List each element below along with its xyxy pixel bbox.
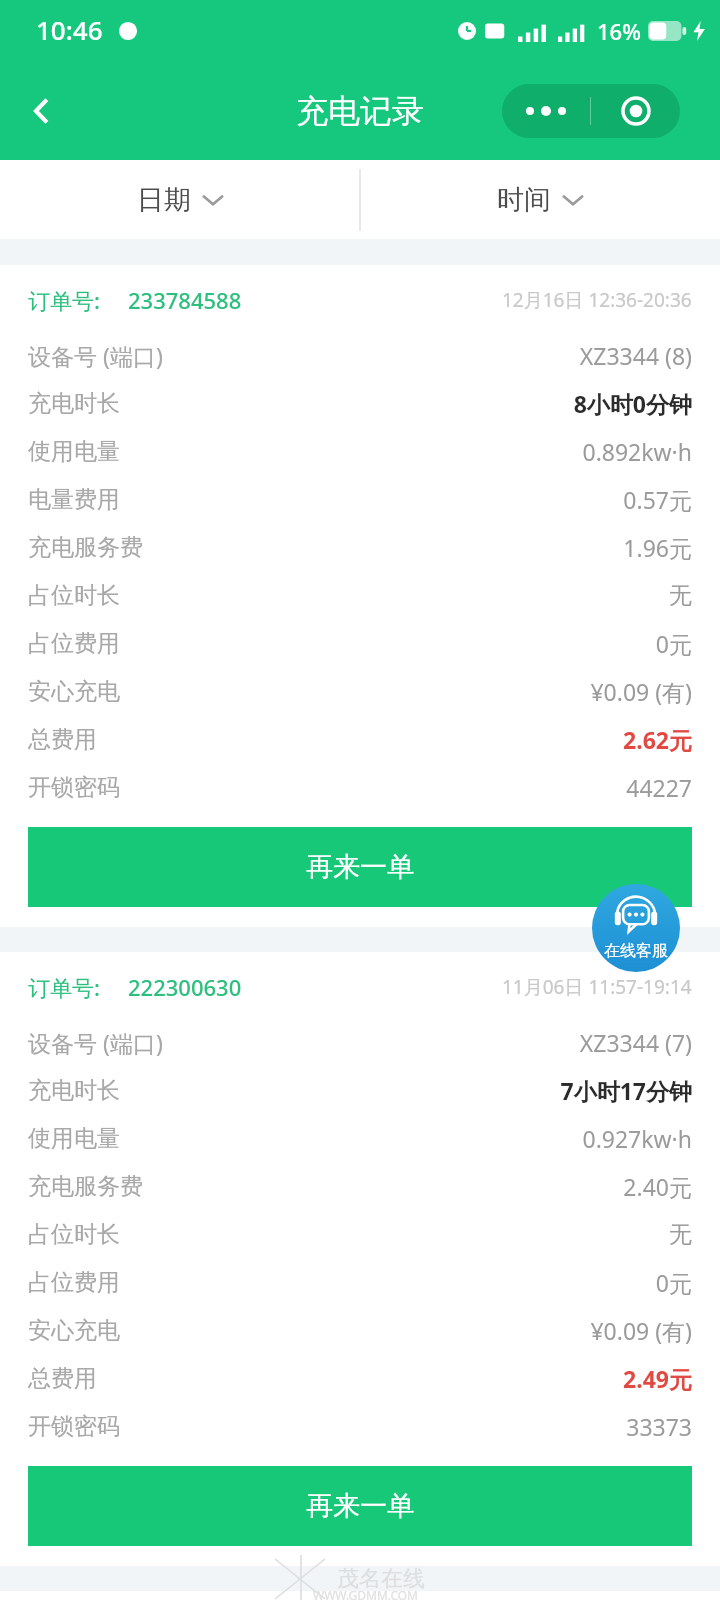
button[interactable]: 再来一单: [28, 827, 692, 907]
staticText: 设备号 (端口): [28, 1027, 163, 1058]
staticText: 充电服务费: [28, 1172, 143, 1201]
button[interactable]: 再来一单: [28, 1466, 692, 1546]
button[interactable]: 日期: [0, 160, 360, 239]
staticText: 11月06日 11:57-19:14: [502, 974, 692, 1000]
button[interactable]: 时间: [360, 160, 720, 239]
staticText: 充电时长: [28, 389, 120, 418]
staticText: 1.96元: [623, 532, 692, 563]
staticText: ¥0.09 (有): [590, 676, 692, 707]
staticText: 10:46: [36, 12, 103, 47]
staticText: 2.40元: [623, 1171, 692, 1202]
staticText: 时间: [497, 183, 551, 217]
staticText: 使用电量: [28, 437, 120, 466]
staticText: 占位时长: [28, 581, 120, 610]
button[interactable]: Back: [14, 83, 70, 139]
staticText: 充电时长: [28, 1076, 120, 1105]
button[interactable]: 在线客服: [592, 884, 680, 972]
staticText: 总费用: [28, 1364, 97, 1393]
staticText: 7小时17分钟: [560, 1075, 692, 1106]
button[interactable]: More: [502, 84, 590, 138]
staticText: 占位时长: [28, 1220, 120, 1249]
staticText: 222300630: [128, 972, 242, 1002]
staticText: 无: [669, 1220, 692, 1249]
staticText: 无: [669, 581, 692, 610]
staticText: 44227: [626, 772, 692, 803]
staticText: 33373: [626, 1411, 692, 1442]
staticText: 使用电量: [28, 1124, 120, 1153]
staticText: WWW.GDMM.COM: [313, 1587, 418, 1600]
staticText: 开锁密码: [28, 1412, 120, 1441]
staticText: 0元: [655, 628, 692, 659]
button[interactable]: 订单号:: [28, 285, 692, 315]
staticText: XZ3344 (8): [579, 340, 692, 371]
staticText: 占位费用: [28, 1268, 120, 1297]
staticText: 233784588: [128, 285, 242, 315]
staticText: 日期: [137, 183, 191, 217]
staticText: 再来一单: [306, 850, 414, 884]
staticText: 0.927kw·h: [582, 1123, 692, 1154]
staticText: 2.62元: [623, 724, 692, 755]
staticText: 12月16日 12:36-20:36: [502, 287, 692, 313]
staticText: 2.49元: [623, 1363, 692, 1394]
staticText: XZ3344 (7): [579, 1027, 692, 1058]
staticText: 订单号:: [28, 285, 100, 315]
staticText: 安心充电: [28, 1316, 120, 1345]
staticText: 充电服务费: [28, 533, 143, 562]
staticText: 再来一单: [306, 1489, 414, 1523]
staticText: 16%: [597, 16, 641, 46]
staticText: 占位费用: [28, 629, 120, 658]
button[interactable]: Close: [591, 84, 680, 138]
staticText: 0.57元: [623, 484, 692, 515]
staticText: 电量费用: [28, 485, 120, 514]
staticText: 在线客服: [604, 941, 668, 961]
staticText: 订单号:: [28, 972, 100, 1002]
staticText: 0元: [655, 1267, 692, 1298]
staticText: 设备号 (端口): [28, 340, 163, 371]
staticText: 开锁密码: [28, 773, 120, 802]
staticText: 茂名在线: [337, 1565, 425, 1593]
staticText: 安心充电: [28, 677, 120, 706]
staticText: 8小时0分钟: [573, 388, 692, 419]
staticText: 充电记录: [296, 91, 424, 131]
staticText: 总费用: [28, 725, 97, 754]
staticText: ¥0.09 (有): [590, 1315, 692, 1346]
button[interactable]: 订单号:: [28, 972, 692, 1002]
staticText: 0.892kw·h: [582, 436, 692, 467]
